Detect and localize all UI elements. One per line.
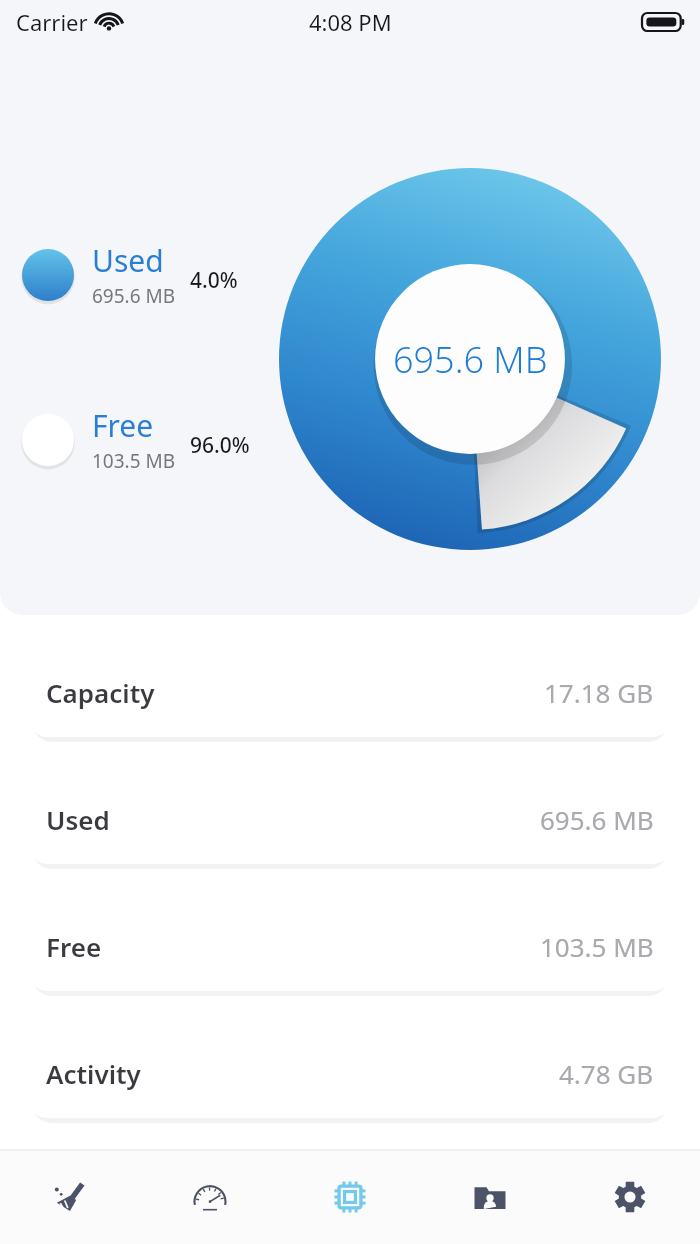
staticText: 4.78 GB [559, 1056, 654, 1091]
button[interactable]: Clean [0, 1150, 140, 1244]
button[interactable]: Used [28, 774, 672, 864]
staticText: Free [46, 929, 102, 964]
button[interactable]: Files [420, 1150, 560, 1244]
staticText: 4:08 PM [309, 7, 392, 37]
staticText: 695.6 MB [540, 802, 654, 837]
button[interactable]: Free [28, 901, 672, 991]
staticText: Capacity [46, 675, 155, 710]
staticText: 103.5 MB [540, 929, 654, 964]
staticText: Activity [46, 1056, 141, 1091]
button[interactable]: Activity [28, 1028, 672, 1118]
staticText: 4.0% [190, 266, 238, 295]
button[interactable]: Settings [560, 1150, 700, 1244]
button[interactable]: Speed test [140, 1150, 280, 1244]
staticText: 695.6 MB [393, 335, 548, 384]
staticText: 695.6 MB [92, 283, 176, 309]
button[interactable]: System info [280, 1150, 420, 1244]
staticText: Carrier [16, 7, 88, 37]
staticText: 17.18 GB [544, 675, 654, 710]
button[interactable]: Capacity [28, 647, 672, 737]
staticText: Used [92, 240, 164, 281]
staticText: Used [46, 802, 110, 837]
staticText: 103.5 MB [92, 448, 176, 474]
staticText: Free [92, 405, 154, 446]
staticText: 96.0% [190, 431, 250, 460]
